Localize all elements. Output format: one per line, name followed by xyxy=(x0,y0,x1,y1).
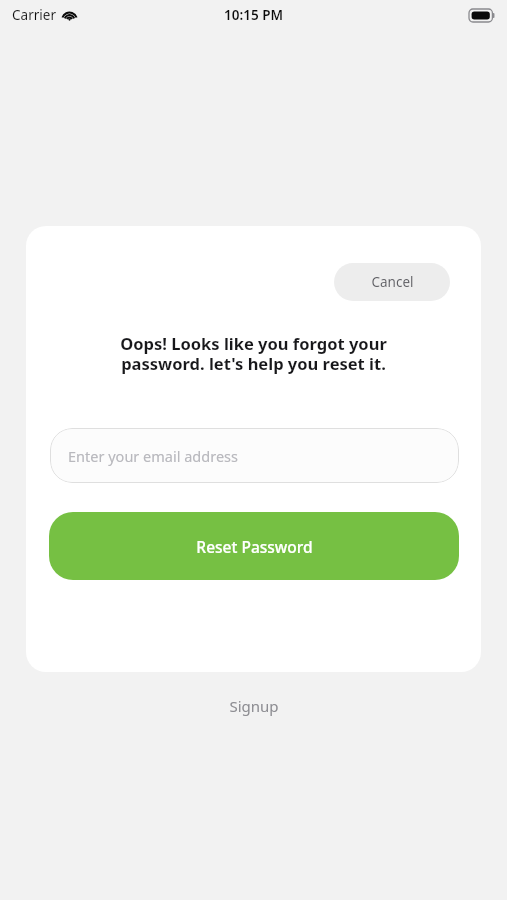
staticText: Enter your email address xyxy=(68,446,238,466)
staticText: Carrier xyxy=(12,6,56,24)
staticText: Reset Password xyxy=(196,536,313,557)
button[interactable]: Cancel xyxy=(334,263,450,301)
button[interactable]: Enter your email address xyxy=(50,428,459,483)
staticText: Signup xyxy=(229,696,279,716)
staticText: Cancel xyxy=(371,273,414,291)
button[interactable]: Reset Password xyxy=(49,512,459,580)
staticText: 10:15 PM xyxy=(224,6,283,24)
staticText: Oops! Looks like you forgot your passwor… xyxy=(120,332,387,375)
button[interactable]: Signup xyxy=(213,690,295,722)
